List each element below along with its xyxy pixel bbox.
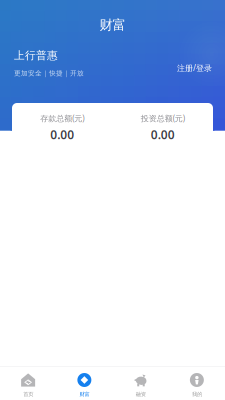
staticText: 0.00 — [50, 127, 74, 142]
staticText: 上行普惠 — [14, 49, 58, 62]
staticText: 0.00 — [151, 127, 175, 142]
button[interactable]: 注册/登录 — [172, 62, 217, 74]
staticText: 财富 — [99, 17, 125, 33]
button[interactable]: 融资 — [112, 367, 169, 400]
staticText: 存款总额(元) — [40, 113, 84, 124]
button[interactable]: 首页 — [0, 367, 56, 400]
staticText: 投资总额(元) — [141, 113, 185, 124]
button[interactable]: 投资总额(元) — [112, 103, 213, 149]
button[interactable]: 我的 — [169, 367, 225, 400]
staticText: 财富 — [79, 391, 89, 398]
staticText: 注册/登录 — [177, 63, 212, 73]
button[interactable]: 存款总额(元) — [12, 103, 112, 149]
staticText: 融资 — [136, 391, 146, 398]
staticText: 首页 — [23, 391, 33, 398]
staticText: 更加安全｜快捷｜开放 — [14, 69, 84, 77]
button[interactable]: 财富 — [56, 367, 112, 400]
staticText: 我的 — [192, 391, 202, 398]
